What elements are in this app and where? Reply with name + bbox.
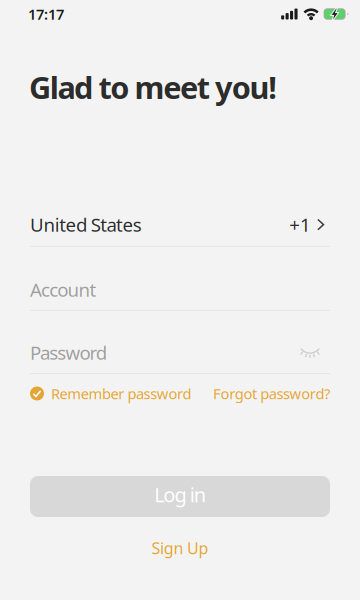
button[interactable]: United States [0,204,360,246]
staticText: Forgot password? [213,384,330,403]
staticText: Password [30,340,107,365]
staticText: Account [30,277,97,302]
staticText: Glad to meet you! [29,67,277,107]
button[interactable]: Log in [30,476,330,517]
staticText: 17:17 [28,4,64,24]
staticText: Remember password [51,384,192,403]
staticText: +1 [289,212,311,237]
button[interactable]: Forgot password? [213,384,330,403]
staticText: Log in [154,481,206,508]
staticText: Sign Up [151,537,209,559]
button[interactable]: Sign Up [151,536,209,560]
button[interactable]: Show password [300,347,330,358]
staticText: United States [30,212,142,237]
button[interactable]: Remember password [30,384,192,403]
